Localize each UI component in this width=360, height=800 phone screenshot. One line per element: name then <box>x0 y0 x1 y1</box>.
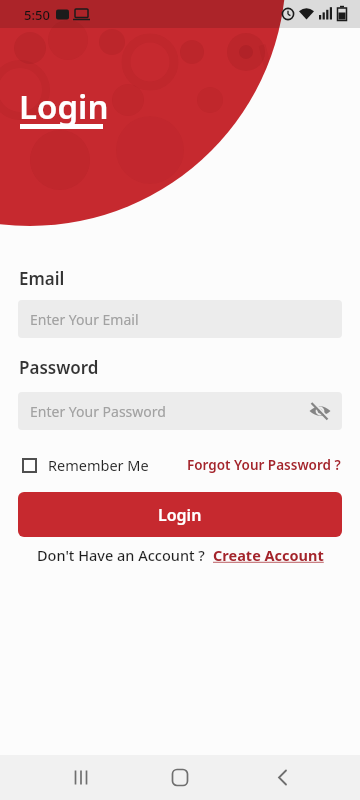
button[interactable]: Login <box>18 492 342 537</box>
button[interactable]: Create Account <box>213 545 324 565</box>
staticText: Enter Your Email <box>30 310 139 329</box>
button[interactable] <box>120 755 240 800</box>
button[interactable]: Remember Me <box>19 455 149 475</box>
staticText: Email <box>19 267 65 290</box>
button[interactable]: Forgot Your Password ? <box>187 456 341 474</box>
button[interactable] <box>0 755 120 800</box>
staticText: 5:50 <box>24 6 50 24</box>
staticText: Remember Me <box>48 455 149 475</box>
button[interactable]: Enter Your Email <box>18 300 342 338</box>
button[interactable] <box>240 755 360 800</box>
button[interactable]: Enter Your Password <box>18 392 342 430</box>
staticText: Password <box>19 356 99 379</box>
staticText: Don't Have an Account ? <box>37 545 213 565</box>
staticText: Login <box>158 504 202 526</box>
staticText: Login <box>19 84 109 129</box>
staticText: Enter Your Password <box>30 402 166 421</box>
